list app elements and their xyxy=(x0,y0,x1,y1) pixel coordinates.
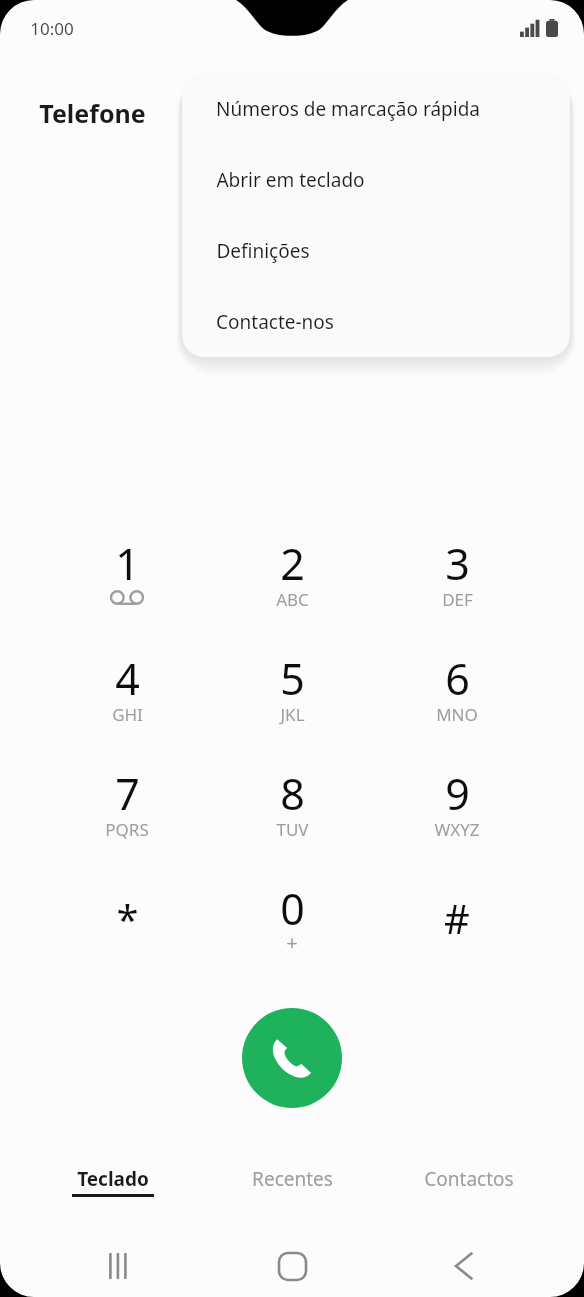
staticText: 0 xyxy=(280,879,305,938)
staticText: 3 xyxy=(445,534,470,593)
button[interactable]: Call xyxy=(242,1008,342,1108)
staticText: Contacte-nos xyxy=(216,309,334,335)
button[interactable]: 9 xyxy=(402,752,512,860)
button[interactable]: 7 xyxy=(72,752,182,860)
button[interactable]: Contacte-nos xyxy=(182,286,570,357)
staticText: 1 xyxy=(115,534,140,593)
button[interactable]: 2 xyxy=(237,522,347,630)
button[interactable]: Home xyxy=(260,1235,324,1297)
button[interactable]: Teclado xyxy=(23,1152,203,1210)
staticText: 5 xyxy=(280,649,305,708)
button[interactable]: 0 xyxy=(237,867,347,975)
staticText: WXYZ xyxy=(434,818,480,841)
staticText: 2 xyxy=(280,534,305,593)
staticText: + xyxy=(286,929,298,956)
staticText: DEF xyxy=(442,588,473,611)
button[interactable]: Back xyxy=(432,1235,496,1297)
button[interactable]: 4 xyxy=(72,637,182,745)
staticText: PQRS xyxy=(105,818,149,841)
button[interactable]: Abrir em teclado xyxy=(182,144,570,215)
staticText: 7 xyxy=(115,764,140,823)
staticText: 6 xyxy=(445,649,470,708)
button[interactable]: 6 xyxy=(402,637,512,745)
staticText: Contactos xyxy=(424,1166,514,1192)
staticText: Teclado xyxy=(77,1166,149,1192)
staticText: * xyxy=(116,891,139,945)
staticText: GHI xyxy=(112,703,143,726)
button[interactable]: * xyxy=(72,867,182,975)
button[interactable]: Recentes xyxy=(202,1152,382,1210)
button[interactable]: Recent apps xyxy=(88,1235,152,1297)
button[interactable]: Números de marcação rápida xyxy=(182,73,570,144)
button[interactable]: # xyxy=(402,867,512,975)
button[interactable]: Contactos xyxy=(379,1152,559,1210)
staticText: 10:00 xyxy=(30,17,74,40)
staticText: Definições xyxy=(216,238,310,264)
staticText: 8 xyxy=(280,764,305,823)
staticText: JKL xyxy=(280,703,305,726)
button[interactable]: Definições xyxy=(182,215,570,286)
staticText: ABC xyxy=(276,588,309,611)
staticText: Abrir em teclado xyxy=(216,167,365,193)
button[interactable]: 5 xyxy=(237,637,347,745)
button[interactable]: 8 xyxy=(237,752,347,860)
staticText: TUV xyxy=(276,818,309,841)
staticText: 9 xyxy=(445,764,470,823)
staticText: Números de marcação rápida xyxy=(216,96,480,122)
button[interactable]: 1 xyxy=(72,522,182,630)
button[interactable]: 3 xyxy=(402,522,512,630)
staticText: # xyxy=(444,891,470,945)
staticText: MNO xyxy=(436,703,478,726)
staticText: Telefone xyxy=(39,96,146,130)
staticText: 4 xyxy=(115,649,140,708)
staticText: Recentes xyxy=(252,1166,333,1192)
